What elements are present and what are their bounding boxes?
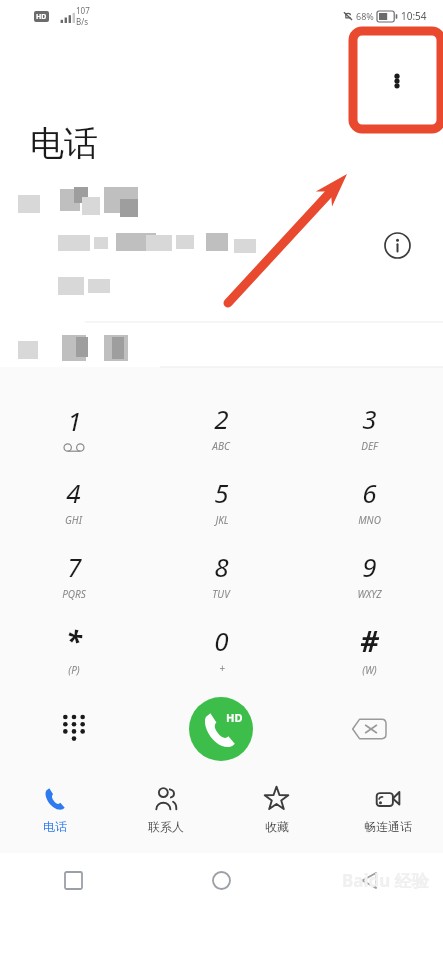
staticText: 收藏 [265, 819, 289, 834]
staticText: B/s [76, 16, 89, 27]
staticText: Baidu 经验 [342, 869, 429, 892]
staticText: DEF [361, 439, 378, 453]
button[interactable]: * [0, 612, 147, 686]
other: Call [147, 692, 295, 765]
staticText: TUV [212, 587, 230, 601]
staticText: HD [36, 12, 47, 22]
staticText: 5 [214, 475, 229, 510]
staticText: ABC [212, 439, 230, 453]
button[interactable]: Home [147, 853, 295, 908]
button[interactable]: 8 [147, 538, 295, 612]
button[interactable]: Contact details [375, 223, 419, 267]
staticText: 联系人 [148, 819, 184, 834]
staticText: PQRS [62, 587, 86, 601]
button[interactable]: 联系人 [110, 765, 221, 853]
button[interactable]: 6 [295, 464, 443, 538]
staticText: 3 [362, 401, 377, 436]
button[interactable]: # [295, 612, 443, 686]
staticText: 电话 [30, 122, 98, 165]
staticText: HD [226, 710, 243, 725]
staticText: 畅连通话 [364, 819, 412, 834]
staticText: 0 [214, 623, 229, 658]
staticText: JKL [215, 513, 229, 527]
button[interactable]: 1 [0, 390, 147, 464]
staticText: 电话 [43, 819, 67, 834]
button[interactable]: 电话 [0, 765, 110, 853]
staticText: 10:54 [401, 9, 427, 23]
button[interactable]: More options [361, 42, 433, 120]
staticText: 68% [356, 10, 374, 22]
staticText: 4 [66, 475, 81, 510]
button[interactable]: Keypad [0, 692, 147, 765]
staticText: 8 [214, 549, 229, 584]
staticText: (W) [362, 663, 377, 677]
button[interactable]: 7 [0, 538, 147, 612]
staticText: MNO [358, 513, 381, 527]
button[interactable]: HD [189, 697, 253, 761]
staticText: + [219, 661, 225, 675]
staticText: * [66, 621, 82, 660]
button[interactable]: Backspace [295, 692, 443, 765]
button[interactable]: 0 [147, 612, 295, 686]
staticText: 2 [214, 401, 229, 436]
button[interactable]: Recents [0, 853, 147, 908]
staticText: 9 [362, 549, 377, 584]
staticText: (P) [68, 663, 80, 677]
button[interactable]: 3 [295, 390, 443, 464]
staticText: GHI [65, 513, 82, 527]
staticText: 6 [362, 475, 377, 510]
button[interactable]: Back [295, 853, 443, 908]
button[interactable]: 收藏 [221, 765, 332, 853]
staticText: 1 [67, 403, 82, 438]
button[interactable]: 4 [0, 464, 147, 538]
button[interactable]: 2 [147, 390, 295, 464]
staticText: WXYZ [357, 587, 382, 601]
staticText: 107 [76, 5, 90, 16]
button[interactable]: 9 [295, 538, 443, 612]
button[interactable]: 5 [147, 464, 295, 538]
button[interactable]: 畅连通话 [332, 765, 443, 853]
staticText: # [360, 621, 379, 660]
staticText: 7 [67, 549, 82, 584]
